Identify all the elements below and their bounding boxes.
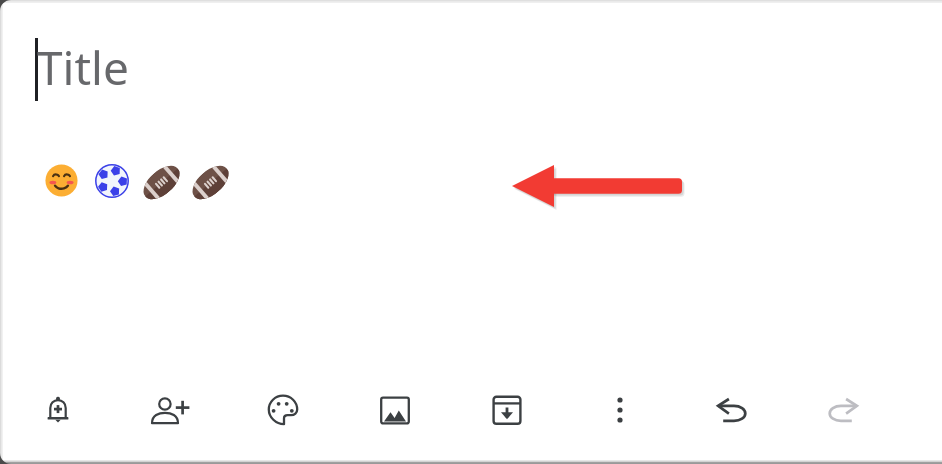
button[interactable]: Title [30, 24, 910, 116]
button[interactable]: Redo [819, 385, 869, 435]
button[interactable]: Undo [706, 385, 756, 435]
button[interactable]: Add image [370, 385, 420, 435]
button[interactable]: Change colour [258, 385, 308, 435]
button[interactable]: More options [595, 385, 645, 435]
button[interactable] [30, 140, 910, 226]
staticText: Title [37, 36, 129, 99]
button[interactable]: Archive [482, 385, 532, 435]
button[interactable]: Add collaborator [145, 385, 195, 435]
button[interactable]: Add reminder [33, 385, 83, 435]
